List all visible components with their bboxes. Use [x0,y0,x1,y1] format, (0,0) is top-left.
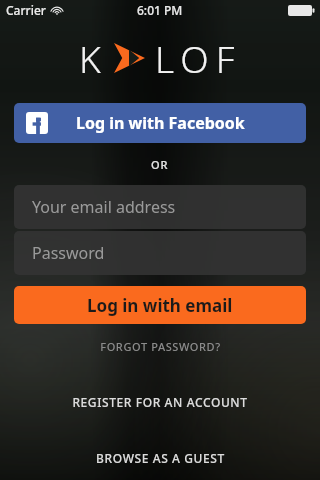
button[interactable]: BROWSE AS A GUEST [0,443,320,473]
button[interactable]: Log in with Facebook [14,103,306,143]
staticText: Log in with Facebook [76,112,245,134]
staticText: 6:01 PM [137,2,183,18]
staticText: FORGOT PASSWORD? [100,339,221,354]
staticText: Carrier [6,2,46,18]
staticText: OR [151,157,169,172]
staticText: BROWSE AS A GUEST [96,450,225,466]
staticText: Log in with email [87,294,233,317]
staticText: K [79,33,108,83]
button[interactable]: Your email address [14,185,306,229]
staticText: Password [32,242,105,264]
button[interactable]: REGISTER FOR AN ACCOUNT [0,387,320,417]
staticText: Your email address [32,196,176,218]
staticText: REGISTER FOR AN ACCOUNT [72,394,248,410]
button[interactable]: FORGOT PASSWORD? [14,332,306,361]
staticText: LOF [155,33,242,83]
button[interactable]: Log in with email [14,286,306,324]
button[interactable]: Password [14,231,306,275]
